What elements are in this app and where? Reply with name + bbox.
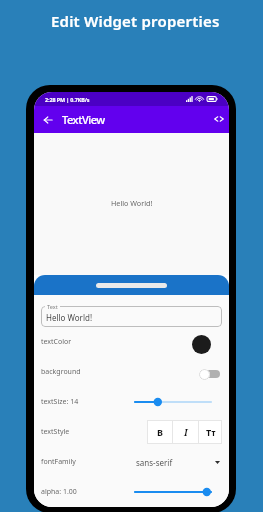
staticText: 2:28 PM | 0.7KB/s bbox=[45, 96, 90, 103]
staticText: textStyle bbox=[41, 427, 136, 437]
button[interactable]: Hello World! bbox=[41, 306, 222, 327]
staticText: sans-serif bbox=[136, 457, 173, 468]
button[interactable]: sans-serif bbox=[139, 452, 220, 472]
staticText: Hello World! bbox=[46, 312, 93, 323]
button[interactable]: Tᴛ bbox=[199, 420, 222, 444]
staticText: fontFamily bbox=[41, 457, 136, 467]
button[interactable]: View code bbox=[209, 109, 228, 128]
staticText: Hello World! bbox=[111, 198, 153, 208]
staticText: alpha: 1.00 bbox=[41, 487, 136, 497]
staticText: background bbox=[41, 367, 136, 377]
staticText: Text bbox=[47, 303, 58, 311]
staticText: textColor bbox=[41, 337, 136, 347]
button[interactable]: Back bbox=[38, 110, 57, 129]
button[interactable] bbox=[135, 396, 211, 408]
button[interactable]: background toggle bbox=[199, 368, 220, 380]
staticText: I bbox=[184, 426, 188, 438]
button[interactable]: I bbox=[173, 420, 198, 444]
button[interactable] bbox=[135, 486, 211, 498]
staticText: Edit Widget properties bbox=[51, 11, 220, 31]
button[interactable]: Pick text colour bbox=[192, 335, 211, 354]
staticText: TextView bbox=[62, 112, 105, 127]
staticText: B bbox=[157, 426, 163, 438]
staticText: Tᴛ bbox=[206, 426, 216, 438]
button[interactable]: B bbox=[147, 420, 172, 444]
staticText: textSize: 14 bbox=[41, 397, 136, 407]
